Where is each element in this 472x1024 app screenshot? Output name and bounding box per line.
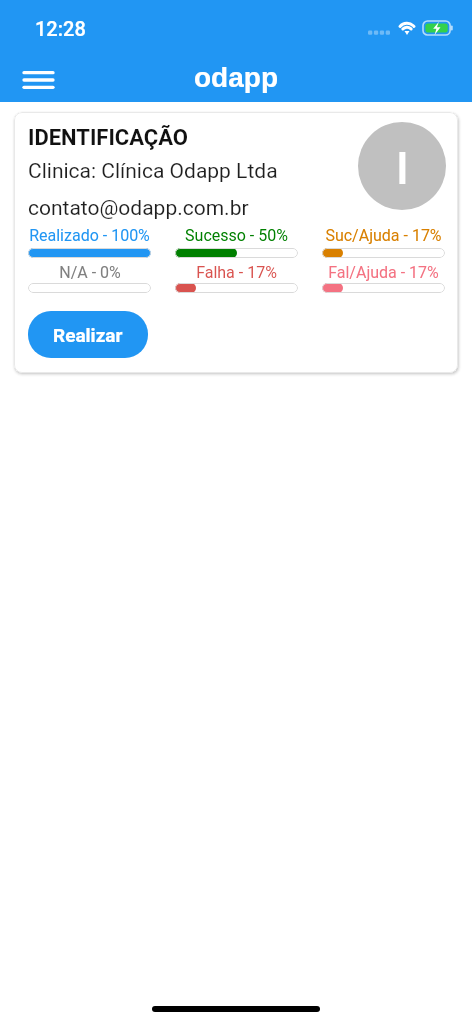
staticText: Realizar xyxy=(53,324,123,346)
staticText: odapp xyxy=(194,62,278,93)
staticText: IDENTIFICAÇÃO xyxy=(28,125,189,151)
staticText: Clinica: Clínica Odapp Ltda xyxy=(28,159,278,184)
button[interactable]: Open navigation menu xyxy=(14,56,62,102)
staticText: N/A - 0% xyxy=(59,263,121,282)
staticText: Realizado - 100% xyxy=(29,226,150,245)
staticText: contato@odapp.com.br xyxy=(28,196,249,221)
staticText: Falha - 17% xyxy=(196,263,277,282)
button[interactable]: Realizar xyxy=(28,311,148,358)
staticText: Suc/Ajuda - 17% xyxy=(325,226,442,245)
staticText: 12:28 xyxy=(35,17,86,40)
staticText: Sucesso - 50% xyxy=(185,226,288,245)
staticText: I xyxy=(396,142,409,195)
staticText: Fal/Ajuda - 17% xyxy=(328,263,439,282)
